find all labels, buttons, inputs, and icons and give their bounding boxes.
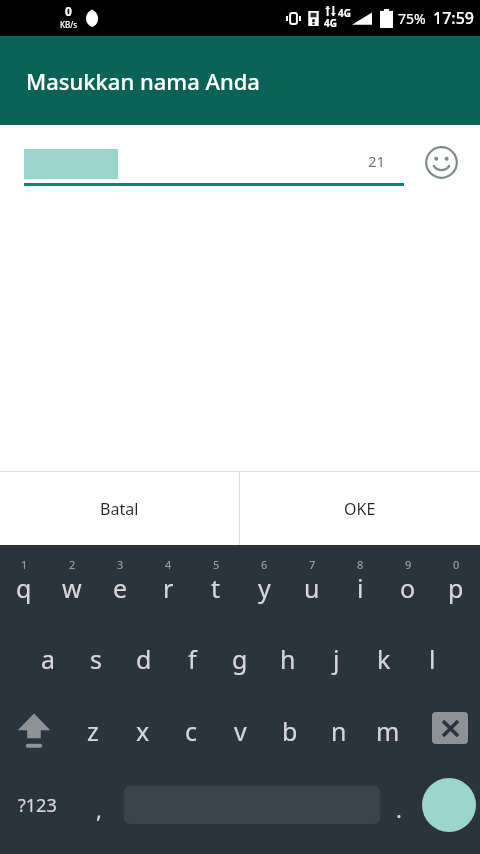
staticText: b [282,714,298,748]
button[interactable]: 1 [0,553,48,621]
staticText: 21 [368,151,386,171]
button[interactable]: Backspace [412,695,480,767]
staticText: 0 [453,557,460,572]
staticText: 75% [398,9,426,28]
staticText: s [90,642,102,676]
button[interactable]: c [167,695,216,767]
button[interactable]: d [120,623,168,695]
staticText: 6 [261,557,268,572]
staticText: y [258,571,271,605]
staticText: x [136,714,150,748]
button[interactable]: 2 [48,553,96,621]
button[interactable]: , [74,767,124,843]
button[interactable]: s [72,623,120,695]
button[interactable]: 4 [144,553,192,621]
button[interactable]: g [216,623,264,695]
staticText: a [41,642,56,676]
staticText: e [113,571,128,605]
button[interactable]: 3 [96,553,144,621]
staticText: k [377,642,391,676]
button[interactable]: z [68,695,118,767]
staticText: z [87,714,99,748]
staticText: o [400,571,416,605]
button[interactable]: x [118,695,167,767]
staticText: 8 [357,557,364,572]
staticText: 4G [324,16,337,30]
staticText: c [185,714,198,748]
staticText: 3 [117,557,124,572]
staticText: l [429,642,436,676]
button[interactable]: . [380,767,418,843]
button[interactable]: Batal [0,472,239,545]
button[interactable]: 0 [432,553,480,621]
staticText: KB/s [60,19,77,30]
staticText: r [163,571,174,605]
button[interactable]: n [314,695,363,767]
button[interactable]: Insert emoji [420,141,462,183]
staticText: 4 [165,557,172,572]
staticText: u [304,571,320,605]
staticText: 9 [405,557,412,572]
staticText: i [357,571,364,605]
staticText: 7 [309,557,316,572]
staticText: v [234,714,247,748]
staticText: j [333,642,340,676]
button[interactable]: 5 [192,553,240,621]
button[interactable]: k [360,623,408,695]
staticText: Masukkan nama Anda [26,66,260,96]
button[interactable]: Enter [418,767,480,843]
button[interactable]: m [363,695,412,767]
button[interactable]: 7 [288,553,336,621]
button[interactable]: b [265,695,314,767]
button[interactable]: 6 [240,553,288,621]
button[interactable]: l [408,623,456,695]
staticText: n [331,714,347,748]
staticText: 1 [21,557,28,572]
button[interactable]: f [168,623,216,695]
staticText: 0 [65,3,72,19]
staticText: 5 [213,557,220,572]
button[interactable]: h [264,623,312,695]
staticText: 4G [338,6,351,20]
staticText: , [96,794,102,824]
staticText: p [448,571,464,605]
button[interactable]: 9 [384,553,432,621]
staticText: q [16,571,32,605]
staticText: g [232,642,248,676]
button[interactable]: OKE [240,472,480,545]
button[interactable]: a [24,623,72,695]
staticText: 17:59 [433,7,474,29]
button[interactable]: j [312,623,360,695]
button[interactable]: v [216,695,265,767]
staticText: m [376,714,400,748]
button[interactable]: Space [124,767,380,843]
staticText: f [188,642,197,676]
staticText: 2 [69,557,76,572]
button[interactable]: 8 [336,553,384,621]
button[interactable]: Shift [0,695,68,767]
staticText: d [136,642,152,676]
staticText: w [62,571,82,605]
staticText: ?123 [18,793,57,818]
staticText: OKE [344,498,376,520]
staticText: Batal [100,498,139,520]
button[interactable]: ?123 [0,767,74,843]
staticText: t [211,571,221,605]
staticText: . [396,794,402,824]
staticText: h [280,642,296,676]
